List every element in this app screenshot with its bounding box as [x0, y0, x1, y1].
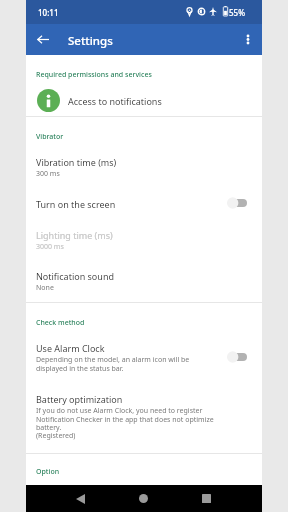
staticText: 10:11 [38, 7, 59, 18]
staticText: Lighting time (ms) [36, 229, 113, 241]
button[interactable]: Turn on the screen [26, 198, 262, 210]
button[interactable]: Home [123, 485, 164, 512]
staticText: Depending on the model, an alarm icon wi… [36, 355, 190, 373]
button[interactable]: Use Alarm Clock [26, 342, 262, 373]
button[interactable]: Notification sound [26, 270, 262, 293]
button[interactable]: Back [60, 485, 101, 512]
button[interactable]: More options [233, 24, 262, 55]
staticText: Required permissions and services [36, 70, 152, 80]
staticText: If you do not use Alarm Clock, you need … [36, 406, 214, 440]
staticText: Turn on the screen [36, 198, 116, 210]
staticText: Use Alarm Clock [36, 342, 105, 354]
staticText: Notification sound [36, 270, 114, 282]
staticText: Vibrator [36, 132, 64, 142]
button[interactable]: Navigate up [26, 24, 58, 55]
button[interactable]: Vibration time (ms) [26, 156, 262, 179]
staticText: None [36, 283, 54, 293]
button[interactable]: Toggle [227, 197, 247, 209]
staticText: 55% [229, 7, 245, 18]
button[interactable]: Lighting time (ms) [26, 229, 262, 252]
staticText: Settings [68, 33, 113, 49]
staticText: Battery optimization [36, 393, 123, 405]
staticText: Check method [36, 318, 85, 328]
staticText: Vibration time (ms) [36, 156, 117, 168]
staticText: Option [36, 467, 60, 477]
button[interactable]: Battery optimization [26, 393, 262, 440]
button[interactable]: Recent apps [186, 485, 227, 512]
button[interactable]: Access to notifications [26, 84, 262, 115]
button[interactable]: Toggle [227, 351, 247, 363]
staticText: 300 ms [36, 169, 60, 179]
staticText: 3000 ms [36, 242, 64, 252]
staticText: Access to notifications [68, 95, 162, 107]
